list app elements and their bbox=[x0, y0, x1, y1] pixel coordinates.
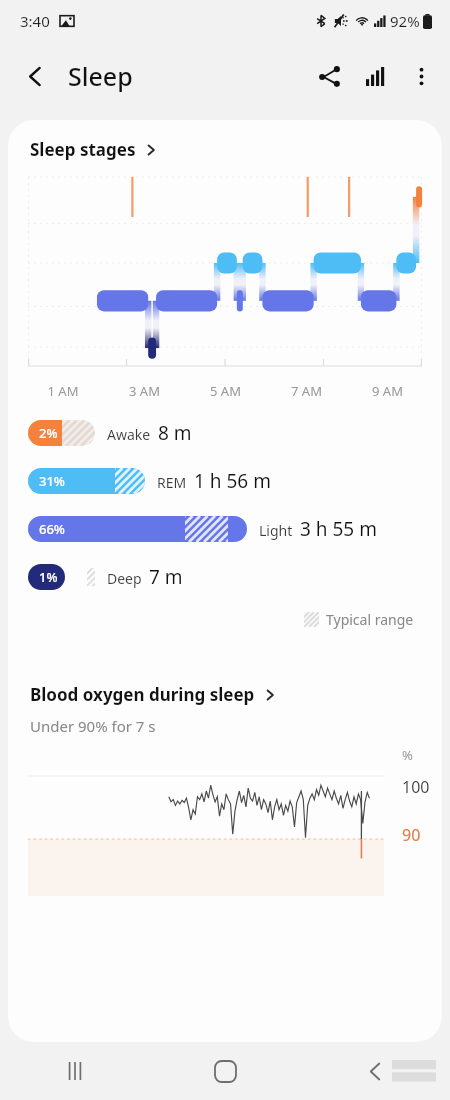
staticText: Light bbox=[259, 521, 293, 540]
button[interactable]: Home bbox=[150, 1042, 300, 1100]
staticText: 3 h 55 m bbox=[300, 516, 377, 542]
button[interactable]: 1% bbox=[8, 564, 442, 590]
button[interactable]: More options bbox=[398, 53, 444, 99]
staticText: 3 AM bbox=[104, 382, 185, 400]
button[interactable]: 31% bbox=[8, 468, 442, 494]
button[interactable]: Recents bbox=[0, 1042, 150, 1100]
staticText: 7 AM bbox=[266, 382, 347, 400]
staticText: % bbox=[402, 746, 413, 764]
staticText: 3:40 bbox=[20, 11, 50, 31]
button[interactable]: Blood oxygen during sleep bbox=[8, 681, 442, 708]
staticText: 9 AM bbox=[347, 382, 428, 400]
staticText: REM bbox=[157, 473, 187, 492]
button[interactable]: Trends bbox=[352, 53, 398, 99]
staticText: Blood oxygen during sleep bbox=[30, 683, 255, 706]
staticText: 1 AM bbox=[22, 382, 104, 400]
staticText: 8 m bbox=[158, 420, 192, 446]
staticText: Sleep stages bbox=[30, 138, 136, 161]
staticText: 92% bbox=[390, 11, 420, 31]
staticText: Typical range bbox=[326, 610, 414, 629]
staticText: 66% bbox=[39, 520, 65, 538]
staticText: Under 90% for 7 s bbox=[30, 716, 156, 736]
button[interactable]: Sleep stages bbox=[8, 136, 442, 163]
staticText: 5 AM bbox=[185, 382, 266, 400]
staticText: 100 bbox=[402, 776, 430, 798]
button[interactable]: 2% bbox=[8, 420, 442, 446]
staticText: 1 h 56 m bbox=[194, 468, 271, 494]
button[interactable]: Back bbox=[12, 53, 58, 99]
staticText: Deep bbox=[107, 569, 142, 588]
button[interactable]: 66% bbox=[8, 516, 442, 542]
staticText: 7 m bbox=[149, 564, 183, 590]
staticText: Awake bbox=[107, 425, 151, 444]
staticText: 2% bbox=[39, 424, 58, 442]
staticText: Sleep bbox=[68, 59, 133, 93]
staticText: 1% bbox=[39, 568, 58, 586]
staticText: 31% bbox=[39, 472, 65, 490]
staticText: 90 bbox=[402, 824, 421, 846]
button[interactable]: Share bbox=[306, 53, 352, 99]
button[interactable]: Back bbox=[300, 1042, 450, 1100]
